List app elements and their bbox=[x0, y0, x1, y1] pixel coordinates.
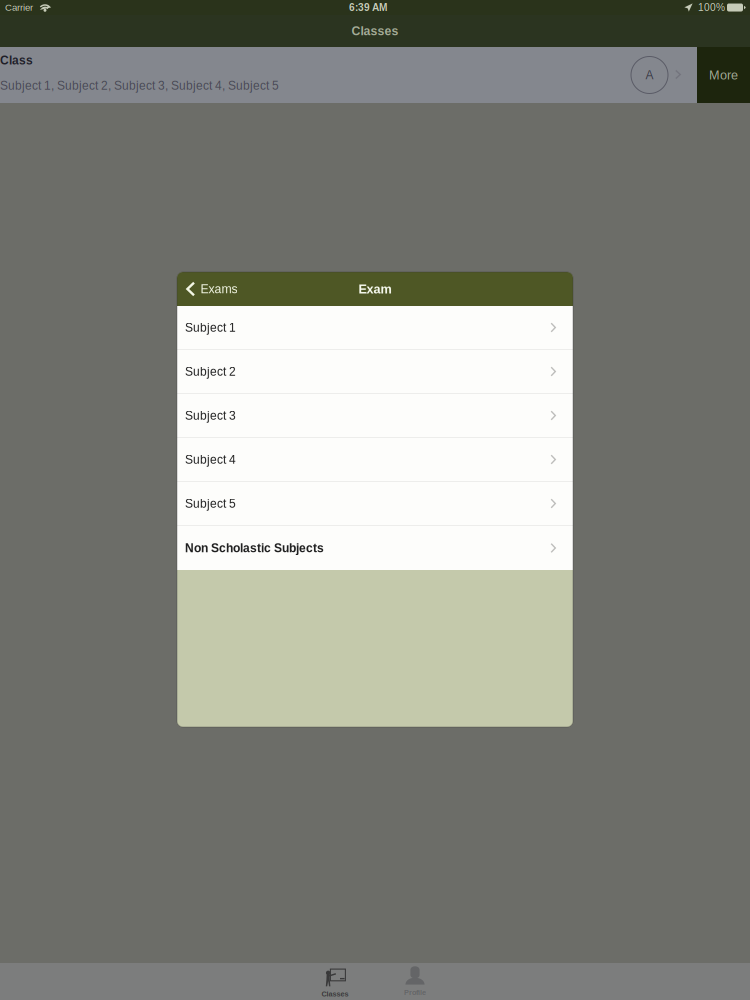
button[interactable]: Non Scholastic Subjects bbox=[177, 526, 573, 570]
staticText: Exam bbox=[358, 282, 391, 296]
staticText: 6:39 AM bbox=[349, 2, 387, 13]
staticText: Subject 1, Subject 2, Subject 3, Subject… bbox=[0, 79, 279, 92]
button[interactable]: Exams bbox=[177, 272, 245, 306]
staticText: More bbox=[709, 68, 738, 82]
staticText: Carrier bbox=[5, 2, 33, 13]
button[interactable]: Subject 5 bbox=[177, 482, 573, 526]
staticText: Exams bbox=[200, 282, 237, 296]
button[interactable]: Subject 4 bbox=[177, 438, 573, 482]
staticText: Non Scholastic Subjects bbox=[185, 541, 324, 555]
staticText: 100% bbox=[698, 2, 725, 13]
staticText: Class bbox=[0, 54, 33, 67]
staticText: Subject 5 bbox=[185, 497, 236, 510]
button[interactable]: Subject 3 bbox=[177, 394, 573, 438]
staticText: Profile bbox=[404, 988, 426, 997]
button[interactable]: Subject 2 bbox=[177, 350, 573, 394]
staticText: Classes bbox=[351, 24, 398, 38]
button[interactable]: Subject 1 bbox=[177, 306, 573, 350]
staticText: Subject 1 bbox=[185, 321, 236, 334]
button[interactable]: Classes bbox=[295, 963, 375, 1000]
staticText: Classes bbox=[321, 990, 348, 998]
staticText: A bbox=[645, 68, 653, 82]
staticText: Subject 4 bbox=[185, 453, 236, 466]
staticText: Subject 2 bbox=[185, 365, 236, 378]
staticText: Subject 3 bbox=[185, 409, 236, 422]
button[interactable]: Profile bbox=[375, 963, 455, 1000]
button[interactable]: More bbox=[697, 47, 750, 103]
